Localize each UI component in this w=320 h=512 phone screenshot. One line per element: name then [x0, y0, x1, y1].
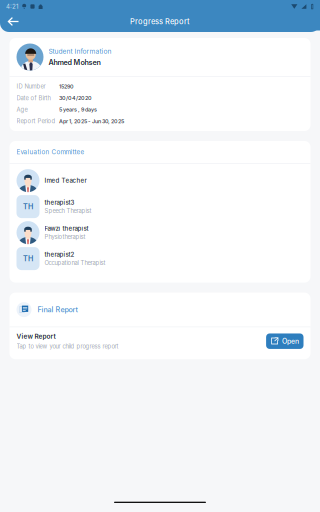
staticText: 30/04/2020 [59, 95, 92, 101]
staticText: Age [16, 106, 27, 113]
staticText: 5 years , 9 days [59, 106, 97, 113]
staticText: Tap to view your child progress report [16, 343, 118, 350]
staticText: Date of Birth [16, 94, 50, 102]
staticText: TH [23, 254, 33, 263]
button[interactable]: TH [9, 194, 310, 220]
staticText: therapist3 [44, 199, 74, 206]
staticText: TH [23, 202, 33, 211]
button[interactable]: Open [266, 333, 303, 349]
button[interactable]: Fawzi therapist [9, 220, 310, 246]
staticText: therapist2 [44, 251, 74, 258]
staticText: Physiotherapist [44, 233, 85, 240]
staticText: Apr 1, 2025 - Jun 30, 2025 [59, 118, 124, 124]
staticText: Fawzi therapist [44, 225, 88, 232]
staticText: Progress Report [130, 17, 190, 26]
staticText: Imed Teacher [44, 177, 86, 184]
staticText: Student Information [48, 47, 111, 55]
staticText: Speech Therapist [44, 207, 91, 214]
staticText: Open [282, 337, 299, 345]
staticText: Report Period [16, 118, 55, 125]
button[interactable]: TH [9, 246, 310, 272]
staticText: Final Report [37, 305, 77, 314]
button[interactable]: Imed Teacher [9, 168, 310, 194]
staticText: 4:21 [6, 3, 18, 10]
button[interactable]: Back [0, 12, 33, 30]
staticText: Ahmed Mohsen [48, 58, 100, 67]
staticText: Occupational Therapist [44, 259, 105, 266]
staticText: 15290 [59, 83, 74, 90]
staticText: Evaluation Committee [16, 148, 84, 156]
staticText: ID Number [16, 83, 45, 90]
staticText: View Report [16, 332, 55, 340]
